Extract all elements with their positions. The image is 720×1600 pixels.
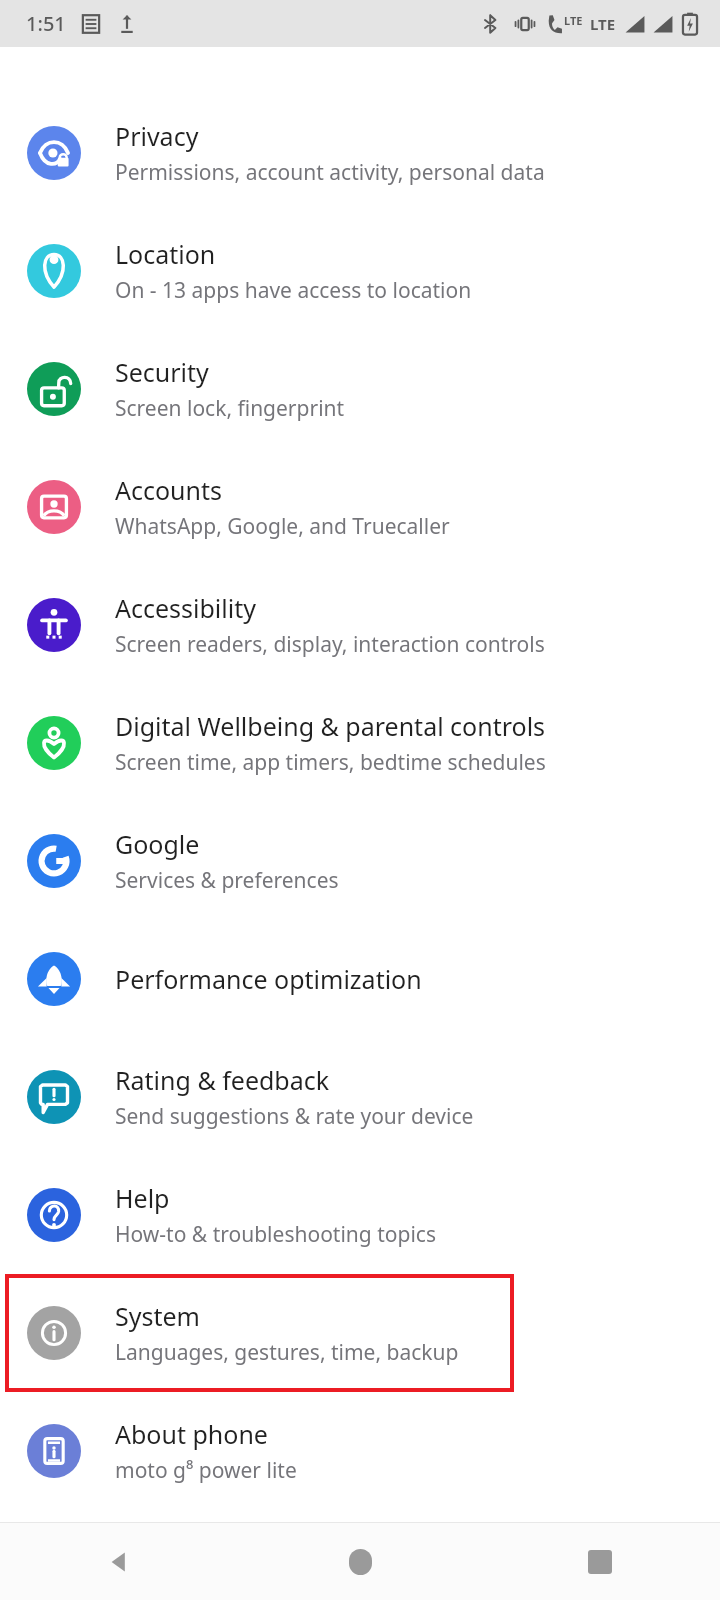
staticText: LTE: [564, 13, 583, 28]
staticText: Help: [115, 1181, 170, 1215]
staticText: Digital Wellbeing & parental controls: [115, 709, 546, 743]
button[interactable]: Performance optimization: [0, 920, 720, 1038]
staticText: Accessibility: [115, 591, 256, 625]
button[interactable]: Google: [0, 802, 720, 920]
staticText: Performance optimization: [115, 962, 422, 996]
staticText: Google: [115, 827, 200, 861]
staticText: WhatsApp, Google, and Truecaller: [115, 512, 450, 541]
button[interactable]: Accessibility: [0, 566, 720, 684]
button[interactable]: Recent apps: [480, 1523, 720, 1600]
staticText: Screen time, app timers, bedtime schedul…: [115, 748, 546, 777]
button[interactable]: Privacy: [0, 94, 720, 212]
staticText: Send suggestions & rate your device: [115, 1102, 474, 1131]
staticText: System: [115, 1299, 200, 1333]
staticText: Privacy: [115, 119, 199, 153]
staticText: Accounts: [115, 473, 223, 507]
staticText: How-to & troubleshooting topics: [115, 1220, 436, 1249]
staticText: On - 13 apps have access to location: [115, 276, 472, 305]
staticText: Permissions, account activity, personal …: [115, 158, 545, 187]
staticText: Screen readers, display, interaction con…: [115, 630, 545, 659]
staticText: Screen lock, fingerprint: [115, 394, 345, 423]
button[interactable]: Back: [0, 1523, 240, 1600]
button[interactable]: System: [0, 1274, 720, 1392]
button[interactable]: Help: [0, 1156, 720, 1274]
staticText: About phone: [115, 1417, 268, 1451]
staticText: Security: [115, 355, 209, 389]
staticText: LTE: [590, 14, 616, 34]
staticText: 1:51: [26, 10, 66, 37]
button[interactable]: Digital Wellbeing & parental controls: [0, 684, 720, 802]
button[interactable]: Security: [0, 330, 720, 448]
staticText: moto g⁸ power lite: [115, 1456, 297, 1485]
button[interactable]: Home: [240, 1523, 480, 1600]
staticText: Services & preferences: [115, 866, 339, 895]
button[interactable]: Accounts: [0, 448, 720, 566]
button[interactable]: Location: [0, 212, 720, 330]
staticText: Location: [115, 237, 216, 271]
button[interactable]: About phone: [0, 1392, 720, 1510]
staticText: Languages, gestures, time, backup: [115, 1338, 459, 1367]
button[interactable]: Rating & feedback: [0, 1038, 720, 1156]
staticText: Rating & feedback: [115, 1063, 330, 1097]
